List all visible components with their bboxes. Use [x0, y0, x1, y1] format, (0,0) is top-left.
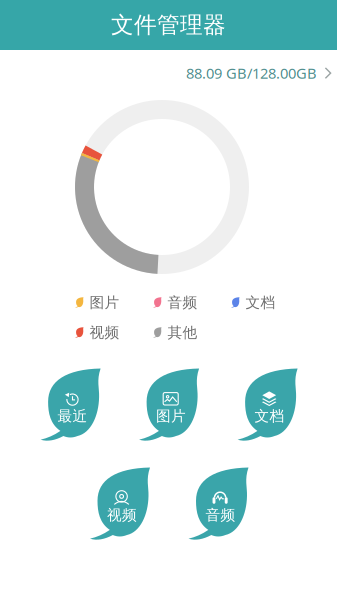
staticText: 音频	[205, 506, 235, 524]
button[interactable]: 最近	[41, 368, 101, 441]
staticText: 图片	[156, 407, 186, 425]
button[interactable]: 音频	[188, 467, 248, 540]
staticText: 图片	[89, 293, 119, 311]
staticText: 文件管理器	[111, 11, 226, 39]
staticText: 最近	[58, 407, 88, 425]
button[interactable]: 视频	[90, 467, 150, 540]
button[interactable]: 文档	[238, 368, 298, 441]
staticText: 音频	[167, 293, 197, 311]
button[interactable]: 图片	[139, 368, 199, 441]
staticText: 视频	[107, 506, 137, 524]
staticText: 视频	[89, 323, 119, 341]
staticText: 文档	[255, 407, 285, 425]
staticText: 其他	[167, 323, 197, 341]
staticText: 文档	[245, 293, 275, 311]
button[interactable]: 88.09 GB/128.00GB	[178, 56, 337, 90]
staticText: 88.09 GB/128.00GB	[186, 63, 317, 83]
